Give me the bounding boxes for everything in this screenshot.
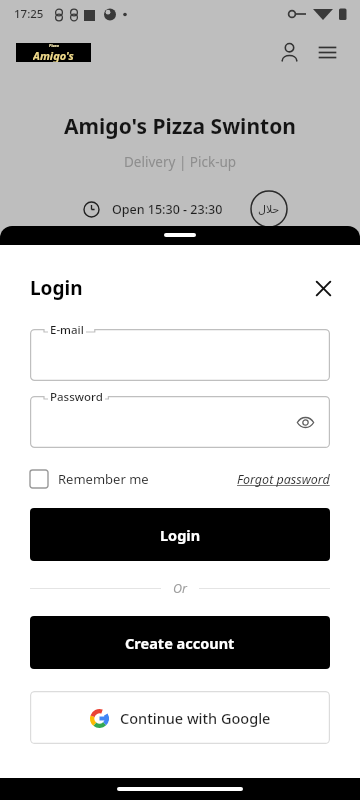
staticText: Continue with Google	[120, 708, 271, 728]
staticText: Login	[30, 275, 83, 301]
button[interactable]: Forgot password	[237, 471, 330, 488]
staticText: Amigo's	[33, 48, 74, 62]
button[interactable]: Amigo's Pizza home	[16, 43, 91, 62]
button[interactable]: Continue with Google	[30, 691, 330, 744]
staticText: Open 15:30 - 23:30	[112, 201, 223, 218]
staticText: Forgot password	[237, 471, 330, 488]
staticText: Password	[50, 389, 103, 405]
button[interactable]: Menu	[308, 33, 346, 71]
button[interactable]: Halal certified	[247, 187, 291, 231]
button[interactable]: E-mail	[30, 329, 330, 381]
button[interactable]: Create account	[30, 616, 330, 669]
staticText: Create account	[125, 633, 235, 653]
staticText: Delivery | Pick-up	[124, 153, 237, 171]
button[interactable]: Show password	[288, 405, 322, 439]
button[interactable]: Account	[270, 33, 308, 71]
button[interactable]: Remember me	[30, 470, 149, 488]
button[interactable]: Password	[30, 396, 330, 448]
staticText: E-mail	[50, 322, 84, 338]
staticText: حلال	[258, 203, 280, 216]
staticText: Pizza	[49, 43, 59, 48]
staticText: Login	[160, 525, 201, 545]
staticText: Amigo's Pizza Swinton	[64, 112, 296, 141]
staticText: Or	[173, 580, 187, 597]
button[interactable]: Open 15:30 - 23:30	[69, 187, 231, 231]
staticText: 17:25	[14, 6, 44, 22]
button[interactable]: Close	[306, 271, 340, 305]
staticText: Remember me	[58, 470, 149, 488]
button[interactable]: Login	[30, 508, 330, 561]
